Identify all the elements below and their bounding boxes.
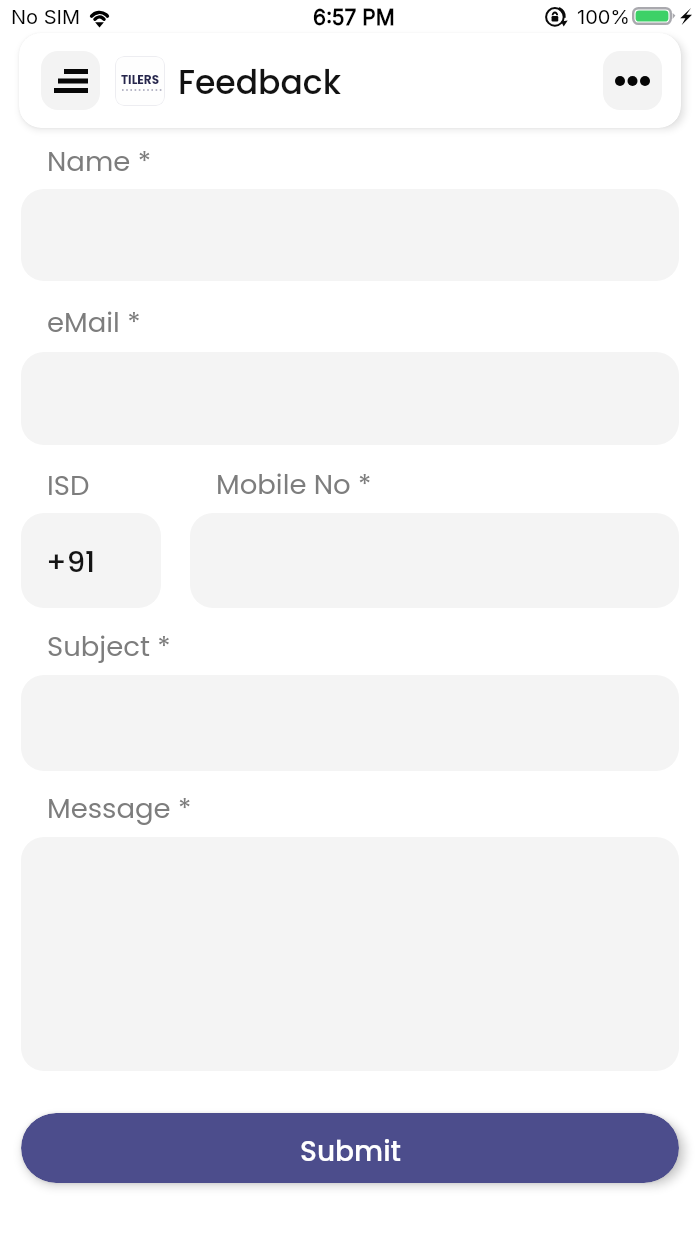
staticText: ISD: [47, 466, 90, 504]
staticText: Subject *: [47, 627, 171, 665]
staticText: +91: [46, 542, 96, 583]
staticText: TILERS: [121, 71, 160, 88]
other: Tilers logo: [115, 56, 165, 106]
staticText: 6:57 PM: [313, 5, 395, 30]
staticText: Name *: [47, 142, 152, 180]
staticText: Mobile No *: [216, 465, 372, 503]
staticText: Message *: [47, 789, 192, 827]
button[interactable]: Submit: [21, 1113, 679, 1183]
staticText: eMail *: [47, 303, 141, 341]
staticText: Submit: [300, 1132, 401, 1171]
staticText: 100%: [577, 5, 631, 29]
button[interactable]: +91: [21, 513, 161, 608]
staticText: No SIM: [11, 5, 80, 29]
button[interactable]: More options: [603, 51, 662, 110]
staticText: Feedback: [178, 59, 341, 105]
button[interactable]: Menu: [41, 51, 100, 110]
